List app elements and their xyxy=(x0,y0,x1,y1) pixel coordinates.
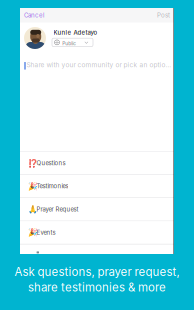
button[interactable]: ⁉️ xyxy=(20,151,174,174)
staticText: Questions xyxy=(36,159,65,167)
button[interactable]: Cancel xyxy=(20,8,48,22)
button[interactable]: 🎉 xyxy=(20,221,174,244)
staticText: Events xyxy=(36,229,55,236)
staticText: Share with your community or pick an opt… xyxy=(27,61,172,69)
button[interactable]: 🙏 xyxy=(20,197,174,221)
staticText: Kunle Adetayo xyxy=(54,29,98,36)
staticText: 🙏 xyxy=(28,205,38,214)
staticText: Cancel xyxy=(24,11,44,19)
staticText: Post xyxy=(157,11,170,19)
staticText: Public xyxy=(62,40,76,46)
staticText: Testimonies xyxy=(36,182,68,190)
staticText: 🎉 xyxy=(28,228,38,237)
staticText: ⁉️ xyxy=(28,158,38,167)
button[interactable]: Audience: Public xyxy=(52,38,93,47)
staticText: Ask questions, prayer request, xyxy=(14,265,179,279)
button[interactable]: Post xyxy=(153,8,174,22)
staticText: 🎉 xyxy=(28,182,38,191)
staticText: Prayer Request xyxy=(36,206,78,213)
button[interactable]: 🎉 xyxy=(20,174,174,197)
staticText: share testimonies & more xyxy=(28,280,166,294)
